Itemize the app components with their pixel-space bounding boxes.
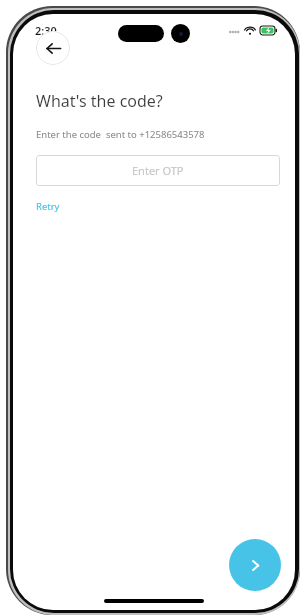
staticText: Retry bbox=[36, 200, 60, 213]
staticText: Enter the code sent to +12586543578 bbox=[36, 128, 205, 141]
button[interactable]: Next bbox=[229, 539, 281, 591]
staticText: 2:30 bbox=[35, 23, 57, 38]
button[interactable]: Enter OTP bbox=[36, 155, 280, 186]
button[interactable]: Back bbox=[36, 31, 70, 65]
button[interactable]: Retry bbox=[36, 200, 60, 213]
staticText: What's the code? bbox=[36, 90, 163, 112]
staticText: Enter OTP bbox=[132, 163, 184, 178]
